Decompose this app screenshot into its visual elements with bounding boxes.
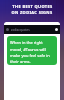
staticText: THE BEST QUOTES — [12, 4, 53, 9]
button[interactable]: Profile — [4, 25, 60, 34]
button[interactable]: When in the right mood, #Taurus will mak… — [7, 36, 57, 65]
other: Menu — [55, 28, 58, 31]
staticText: ON ZODIAC SIGNS — [11, 10, 53, 15]
other: Profile — [6, 28, 9, 31]
staticText: When in the right mood, #Taurus will mak… — [10, 40, 54, 63]
staticText: zodiacquotes — [11, 28, 30, 32]
